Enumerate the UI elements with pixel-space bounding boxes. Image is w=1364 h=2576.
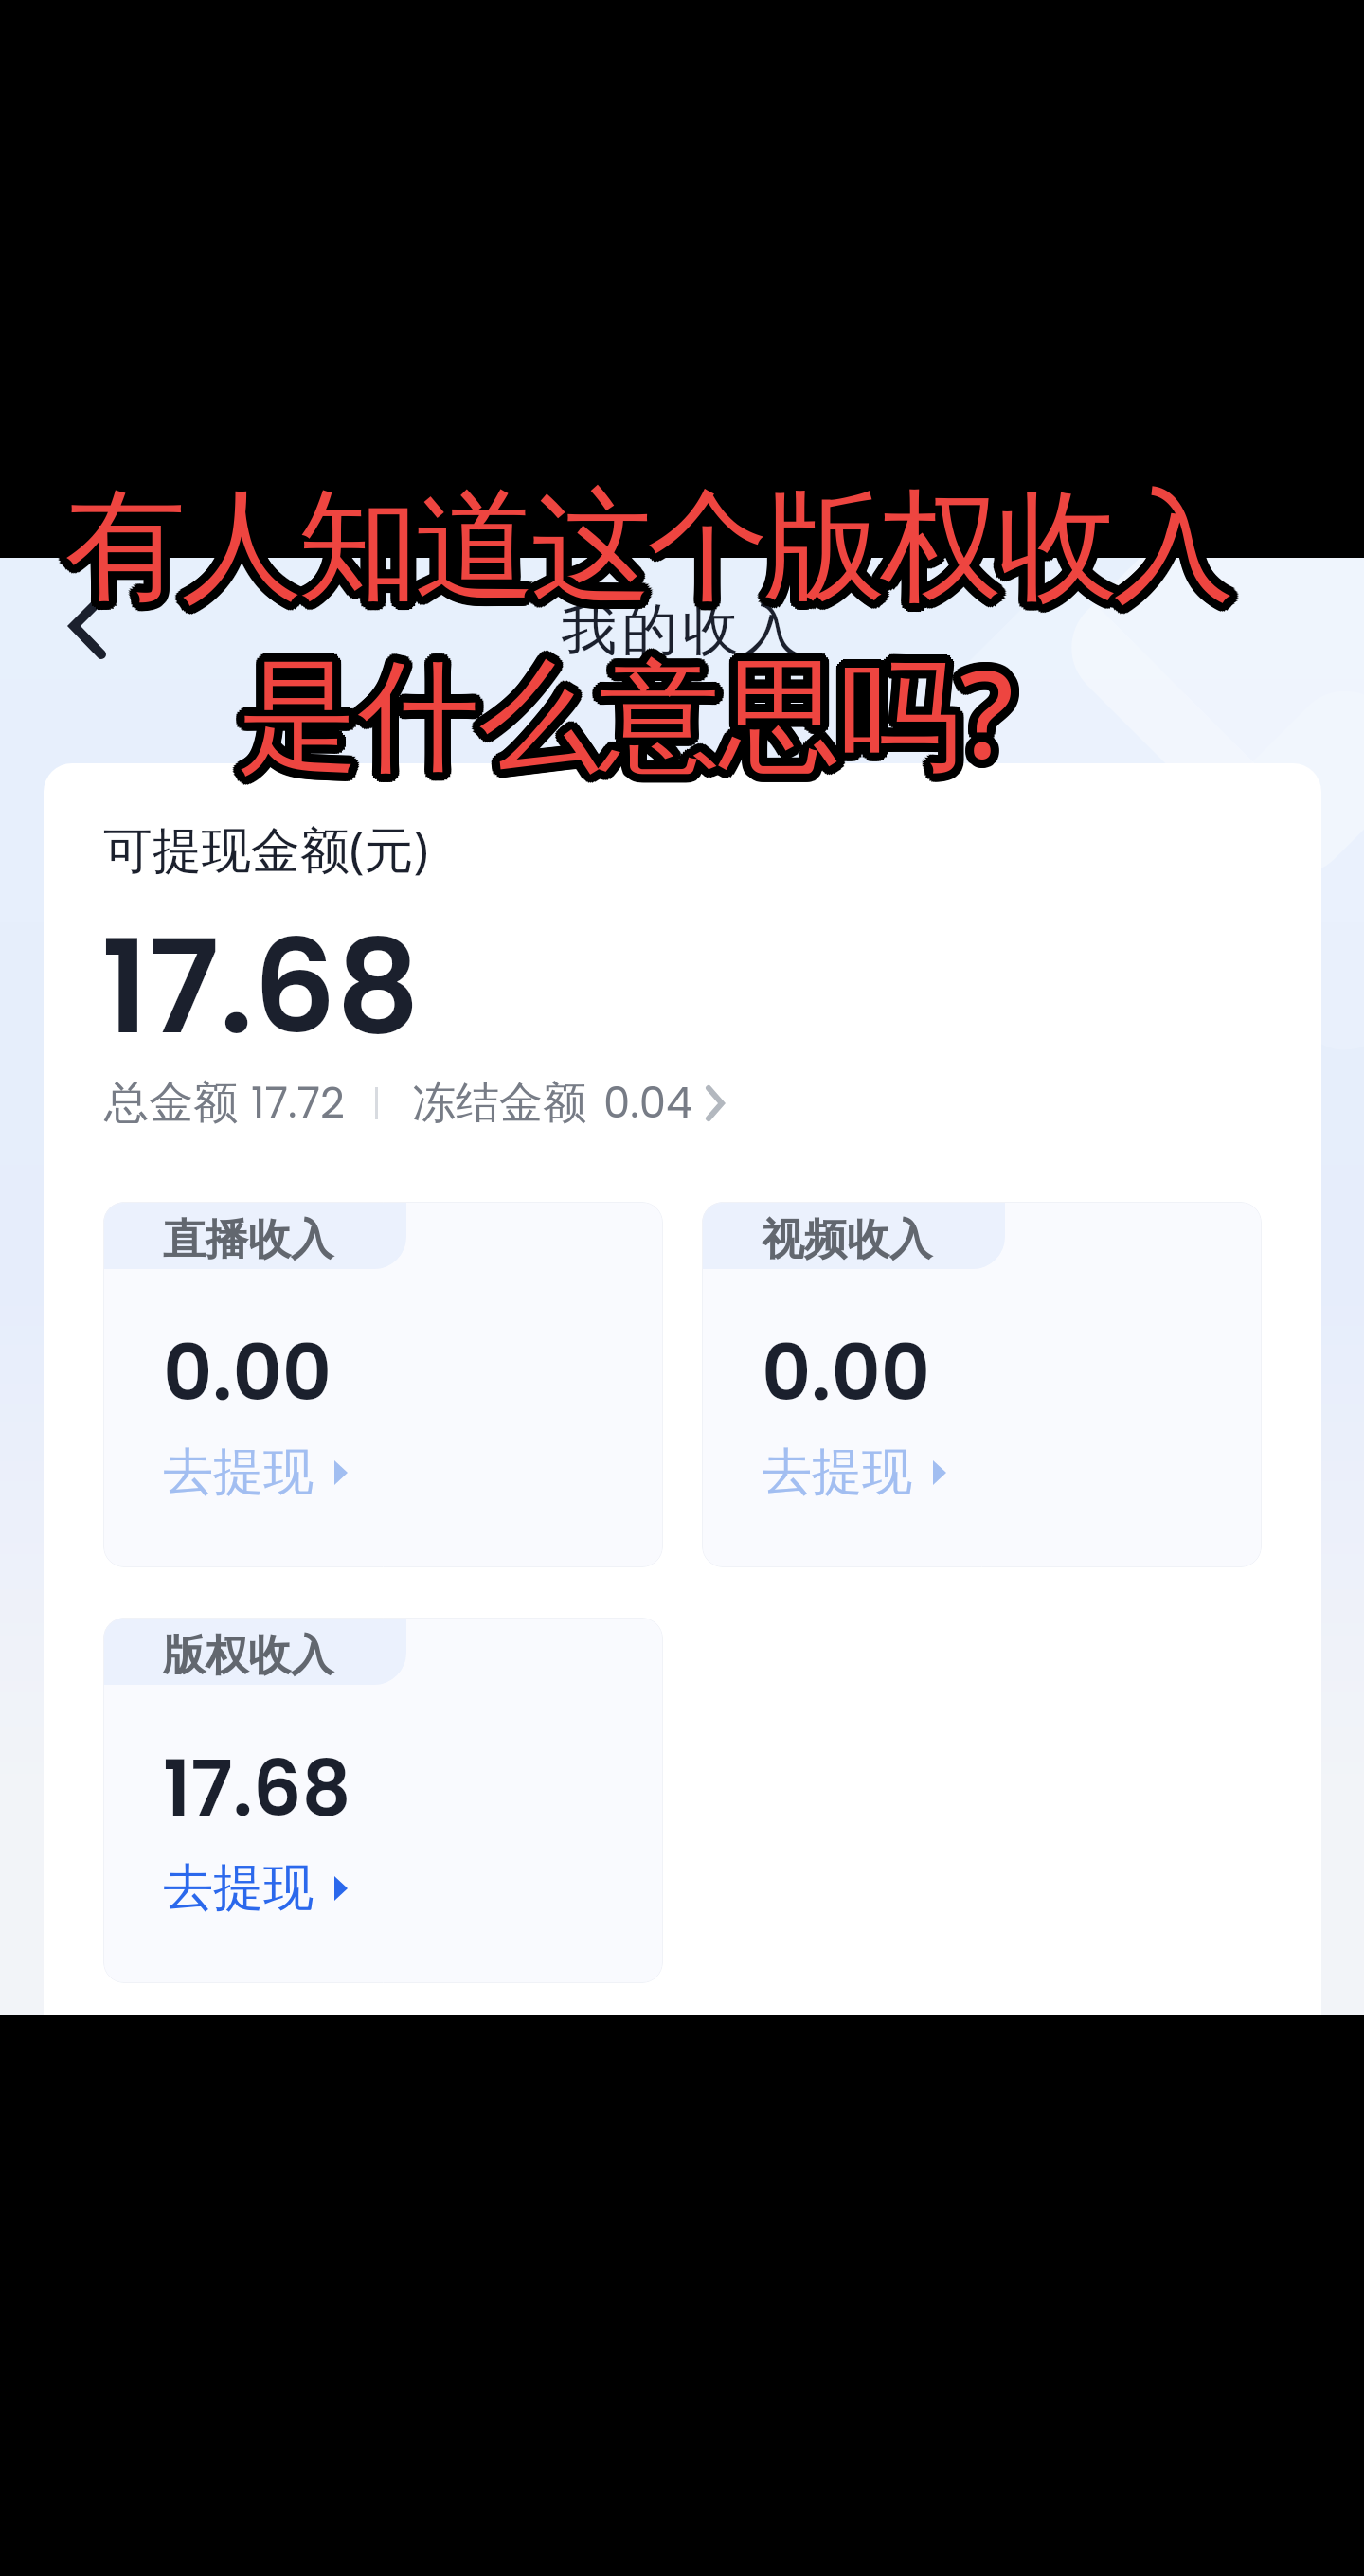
staticText: 是什么意思吗? <box>241 633 1016 798</box>
button[interactable]: 视频收入 <box>702 1202 1262 1567</box>
staticText: 有人知道这个版权收入 <box>73 473 1238 625</box>
staticText: 是什么意思吗? <box>232 634 1008 799</box>
staticText: 是什么意思吗? <box>230 633 1006 798</box>
staticText: 有人知道这个版权收入 <box>68 474 1233 626</box>
button[interactable]: 版权收入 <box>103 1618 663 1983</box>
staticText: 是什么意思吗? <box>240 622 1015 788</box>
staticText: 是什么意思吗? <box>232 626 1008 792</box>
staticText: 是什么意思吗? <box>237 631 1013 796</box>
staticText: 有人知道这个版权收入 <box>71 474 1236 627</box>
staticText: 有人知道这个版权收入 <box>65 476 1230 629</box>
button[interactable]: 直播收入 <box>103 1202 663 1567</box>
staticText: 有人知道这个版权收入 <box>68 468 1233 620</box>
staticText: 是什么意思吗? <box>237 625 1013 791</box>
staticText: 是什么意思吗? <box>240 619 1015 785</box>
staticText: 是什么意思吗? <box>238 619 1014 785</box>
staticText: 是什么意思吗? <box>241 630 1016 796</box>
staticText: 是什么意思吗? <box>242 620 1018 786</box>
staticText: 有人知道这个版权收入 <box>64 470 1229 622</box>
staticText: 是什么意思吗? <box>236 619 1012 785</box>
staticText: 有人知道这个版权收入 <box>69 479 1234 632</box>
button[interactable]: Back <box>38 565 136 671</box>
staticText: 有人知道这个版权收入 <box>67 471 1232 623</box>
staticText: 是什么意思吗? <box>236 622 1012 788</box>
staticText: 是什么意思吗? <box>245 633 1021 798</box>
staticText: 有人知道这个版权收入 <box>63 474 1229 627</box>
staticText: 是什么意思吗? <box>235 633 1011 798</box>
staticText: 有人知道这个版权收入 <box>76 473 1241 625</box>
staticText: 有人知道这个版权收入 <box>76 471 1241 623</box>
staticText: 有人知道这个版权收入 <box>59 473 1224 625</box>
staticText: 有人知道这个版权收入 <box>71 467 1236 619</box>
staticText: 有人知道这个版权收入 <box>59 469 1224 621</box>
staticText: 有人知道这个版权收入 <box>60 467 1225 619</box>
staticText: 视频收入 <box>762 1213 932 1267</box>
staticText: 有人知道这个版权收入 <box>62 465 1227 617</box>
staticText: 是什么意思吗? <box>235 630 1011 796</box>
staticText: 有人知道这个版权收入 <box>62 469 1227 621</box>
staticText: 有人知道这个版权收入 <box>64 466 1229 618</box>
staticText: 有人知道这个版权收入 <box>63 468 1228 620</box>
staticText: 有人知道这个版权收入 <box>65 473 1230 625</box>
staticText: 是什么意思吗? <box>229 630 1005 796</box>
staticText: 有人知道这个版权收入 <box>75 475 1240 628</box>
staticText: 有人知道这个版权收入 <box>67 479 1232 632</box>
staticText: 0.00 <box>762 1319 931 1426</box>
staticText: 有人知道这个版权收入 <box>62 476 1227 629</box>
staticText: 是什么意思吗? <box>238 625 1014 791</box>
staticText: 我的收入 <box>559 595 801 665</box>
staticText: 是什么意思吗? <box>241 627 1016 793</box>
staticText: 有人知道这个版权收入 <box>70 470 1235 622</box>
staticText: 是什么意思吗? <box>246 628 1022 794</box>
staticText: 有人知道这个版权收入 <box>72 468 1237 620</box>
staticText: 是什么意思吗? <box>241 629 1016 795</box>
staticText: 有人知道这个版权收入 <box>65 462 1230 615</box>
staticText: 是什么意思吗? <box>243 628 1019 794</box>
staticText: 是什么意思吗? <box>241 623 1016 789</box>
staticText: 是什么意思吗? <box>232 628 1008 794</box>
staticText: 有人知道这个版权收入 <box>63 467 1229 619</box>
staticText: 版权收入 <box>163 1629 333 1683</box>
staticText: 有人知道这个版权收入 <box>73 476 1238 629</box>
staticText: 有人知道这个版权收入 <box>70 466 1235 618</box>
staticText: 有人知道这个版权收入 <box>64 473 1229 625</box>
staticText: 去提现 <box>762 1440 912 1504</box>
staticText: 有人知道这个版权收入 <box>62 471 1227 623</box>
staticText: 是什么意思吗? <box>243 622 1019 788</box>
staticText: 有人知道这个版权收入 <box>65 479 1230 632</box>
staticText: 是什么意思吗? <box>235 629 1011 795</box>
button[interactable]: 总金额 <box>104 1073 727 1133</box>
staticText: 有人知道这个版权收入 <box>67 462 1232 615</box>
staticText: 是什么意思吗? <box>240 634 1015 799</box>
staticText: 是什么意思吗? <box>236 626 1012 792</box>
staticText: 是什么意思吗? <box>240 630 1015 796</box>
staticText: 是什么意思吗? <box>235 628 1011 794</box>
staticText: 是什么意思吗? <box>235 623 1011 789</box>
staticText: 有人知道这个版权收入 <box>64 472 1229 624</box>
staticText: 是什么意思吗? <box>242 635 1018 801</box>
staticText: 是什么意思吗? <box>240 626 1015 792</box>
staticText: 有人知道这个版权收入 <box>64 475 1229 628</box>
staticText: 有人知道这个版权收入 <box>70 470 1235 622</box>
staticText: 去提现 <box>163 1856 314 1920</box>
staticText: 是什么意思吗? <box>234 624 1010 790</box>
staticText: 有人知道这个版权收入 <box>62 473 1227 625</box>
staticText: 有人知道这个版权收入 <box>63 478 1229 631</box>
staticText: 有人知道这个版权收入 <box>72 478 1237 631</box>
staticText: 是什么意思吗? <box>230 624 1006 790</box>
staticText: 有人知道这个版权收入 <box>70 473 1235 625</box>
staticText: 有人知道这个版权收入 <box>64 470 1229 622</box>
staticText: 是什么意思吗? <box>242 625 1018 791</box>
staticText: 是什么意思吗? <box>239 631 1014 796</box>
staticText: 去提现 <box>163 1440 314 1504</box>
staticText: 有人知道这个版权收入 <box>65 469 1230 621</box>
staticText: 是什么意思吗? <box>235 627 1011 793</box>
staticText: 有人知道这个版权收入 <box>73 469 1238 621</box>
staticText: 17.68 <box>101 896 421 1078</box>
staticText: 是什么意思吗? <box>240 636 1015 802</box>
staticText: 是什么意思吗? <box>241 628 1016 794</box>
staticText: 总金额 <box>104 1075 238 1131</box>
staticText: 有人知道这个版权收入 <box>66 474 1231 626</box>
staticText: 是什么意思吗? <box>233 625 1009 791</box>
staticText: 是什么意思吗? <box>243 634 1019 799</box>
